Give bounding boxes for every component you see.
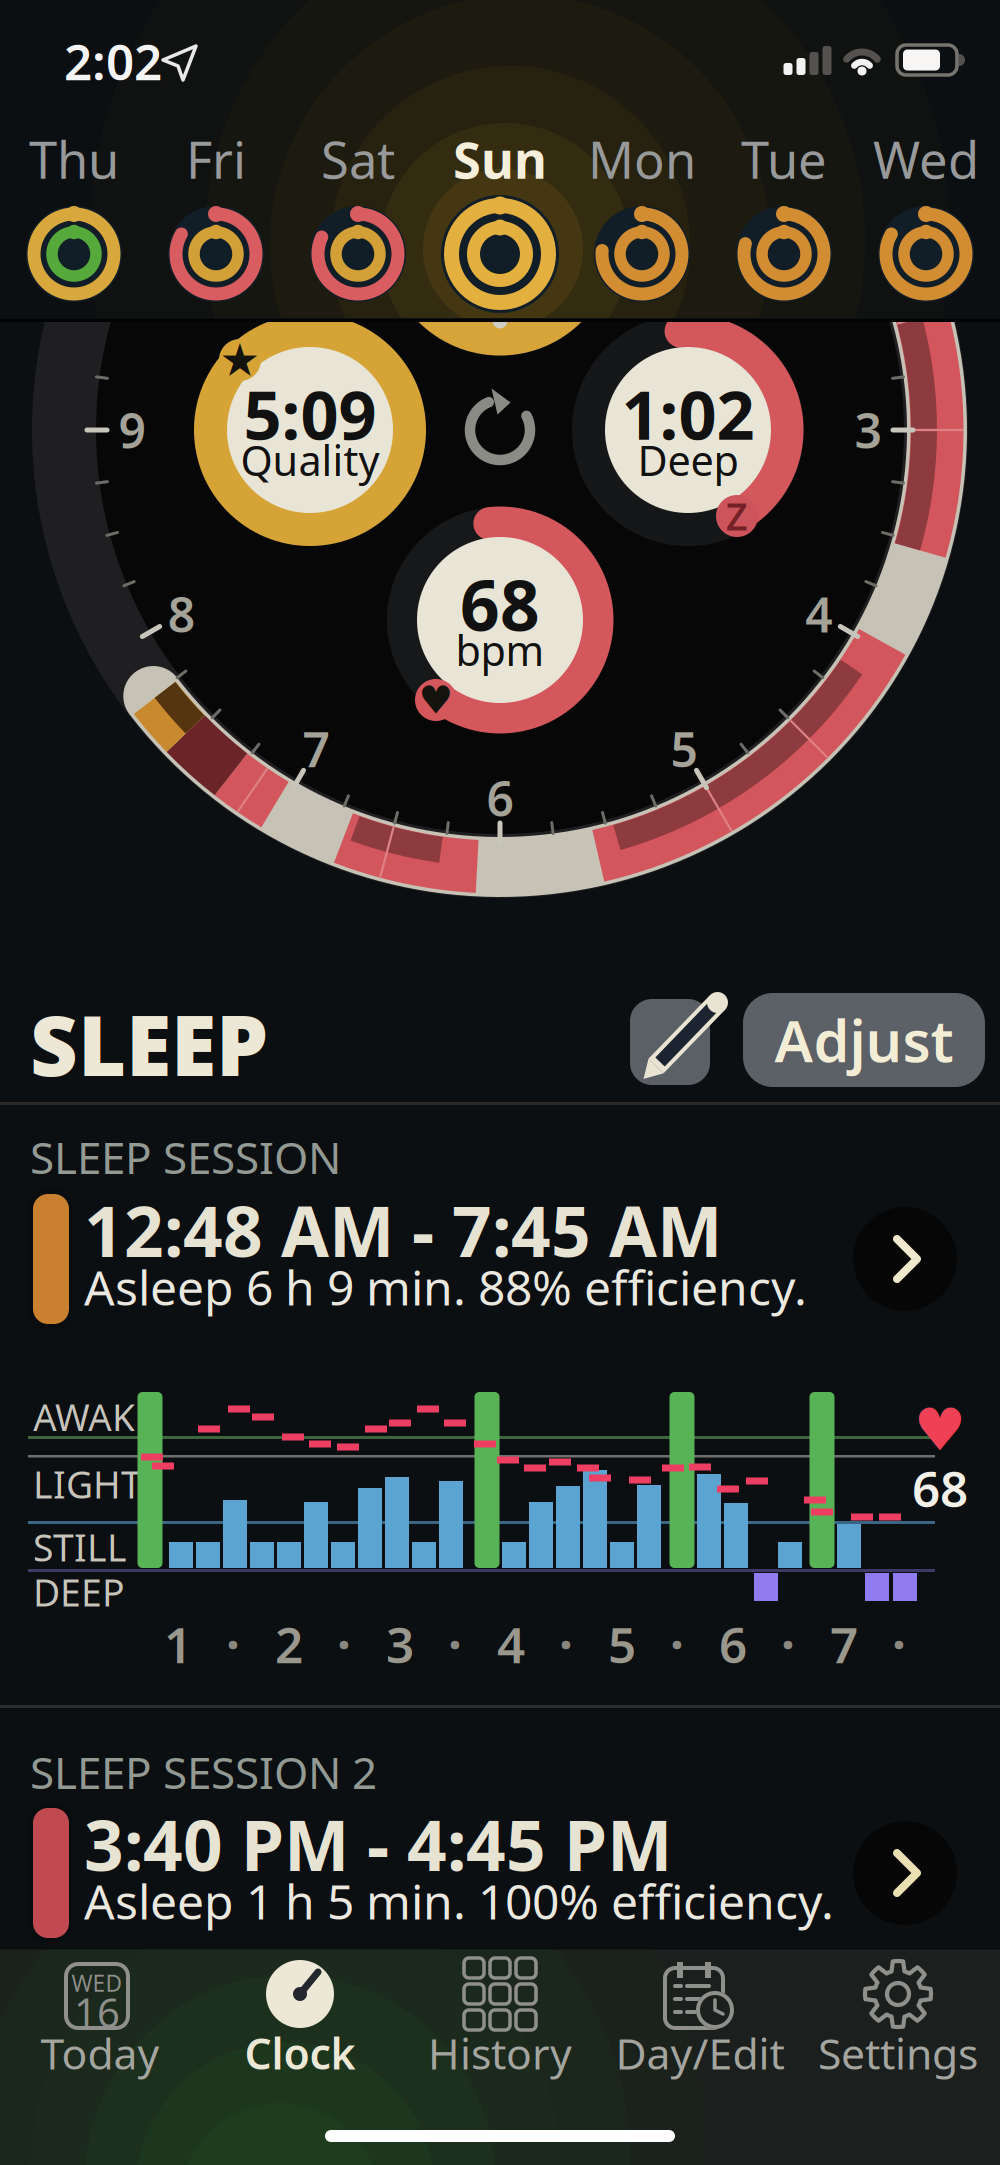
button[interactable]: History bbox=[437, 1948, 563, 2074]
staticText: AWAKE bbox=[33, 1392, 156, 1442]
staticText: Fri bbox=[186, 125, 246, 193]
staticText: · bbox=[448, 1611, 462, 1677]
button[interactable]: Settings bbox=[835, 1948, 961, 2074]
button[interactable]: Sun bbox=[430, 107, 570, 317]
staticText: · bbox=[226, 1611, 240, 1677]
staticText: 6 bbox=[486, 766, 513, 830]
button[interactable]: Wed bbox=[856, 107, 996, 317]
staticText: 3 bbox=[386, 1611, 414, 1677]
staticText: Deep bbox=[637, 433, 738, 487]
staticText: WED bbox=[71, 1968, 122, 1998]
staticText: 7 bbox=[302, 717, 329, 780]
staticText: 1:02 bbox=[621, 370, 754, 458]
staticText: Mon bbox=[588, 125, 696, 193]
staticText: 6 bbox=[719, 1611, 747, 1677]
staticText: 7 bbox=[830, 1611, 858, 1677]
staticText: 5 bbox=[608, 1611, 636, 1677]
staticText: Wed bbox=[873, 125, 979, 193]
button[interactable]: Day/Edit bbox=[637, 1948, 763, 2074]
staticText: Adjust bbox=[774, 1002, 953, 1078]
button[interactable]: Clock bbox=[237, 1948, 363, 2074]
staticText: 8 bbox=[168, 582, 195, 646]
staticText: Z bbox=[726, 491, 748, 541]
staticText: SLEEP bbox=[30, 989, 268, 1099]
staticText: Thu bbox=[29, 125, 119, 193]
staticText: ★ bbox=[219, 334, 260, 386]
staticText: 1 bbox=[164, 1611, 192, 1677]
staticText: 3:40 PM - 4:45 PM bbox=[84, 1798, 672, 1890]
staticText: · bbox=[337, 1611, 351, 1677]
staticText: 12:48 AM - 7:45 AM bbox=[84, 1184, 722, 1276]
staticText: 4 bbox=[497, 1611, 525, 1677]
staticText: · bbox=[892, 1611, 906, 1677]
button[interactable]: Thu bbox=[4, 107, 144, 317]
staticText: 4 bbox=[805, 582, 832, 646]
staticText: Asleep 6 h 9 min. 88% efficiency. bbox=[84, 1255, 807, 1319]
staticText: ♥ bbox=[418, 678, 453, 722]
staticText: 3 bbox=[854, 398, 881, 462]
staticText: ♥ bbox=[913, 1397, 966, 1463]
staticText: History bbox=[428, 2025, 572, 2081]
button[interactable]: Sat bbox=[288, 107, 428, 317]
button[interactable]: Refresh bbox=[458, 388, 542, 472]
staticText: Settings bbox=[818, 2025, 978, 2081]
staticText: · bbox=[670, 1611, 684, 1677]
staticText: DEEP bbox=[33, 1567, 125, 1617]
staticText: STILL bbox=[33, 1522, 127, 1572]
staticText: SLEEP SESSION bbox=[30, 1128, 341, 1186]
staticText: 5:09 bbox=[243, 370, 376, 458]
staticText: Today bbox=[40, 2025, 159, 2081]
staticText: Day/Edit bbox=[615, 2025, 784, 2081]
button[interactable]: WED bbox=[37, 1948, 163, 2074]
button[interactable]: Fri bbox=[146, 107, 286, 317]
staticText: Quality bbox=[240, 433, 379, 487]
button[interactable]: Session details bbox=[853, 1821, 957, 1925]
staticText: 68 bbox=[912, 1455, 968, 1521]
staticText: LIGHT bbox=[33, 1459, 142, 1509]
staticText: Asleep 1 h 5 min. 100% efficiency. bbox=[84, 1869, 834, 1933]
staticText: Tue bbox=[741, 125, 827, 193]
staticText: 9 bbox=[118, 398, 145, 462]
staticText: · bbox=[559, 1611, 573, 1677]
button[interactable]: Session details bbox=[853, 1207, 957, 1311]
staticText: Clock bbox=[244, 2025, 355, 2081]
staticText: Sun bbox=[453, 125, 547, 193]
staticText: 68 bbox=[460, 558, 540, 650]
button[interactable]: Edit bbox=[630, 999, 710, 1085]
button[interactable]: Adjust bbox=[743, 993, 985, 1087]
staticText: 5 bbox=[670, 717, 697, 780]
staticText: SLEEP SESSION 2 bbox=[30, 1743, 377, 1801]
staticText: · bbox=[781, 1611, 795, 1677]
button[interactable]: Mon bbox=[572, 107, 712, 317]
staticText: 2 bbox=[275, 1611, 303, 1677]
staticText: 2:02 bbox=[64, 28, 162, 94]
button[interactable]: Tue bbox=[714, 107, 854, 317]
staticText: Sat bbox=[321, 125, 395, 193]
staticText: bpm bbox=[455, 623, 544, 677]
staticText: 16 bbox=[74, 1985, 120, 2038]
